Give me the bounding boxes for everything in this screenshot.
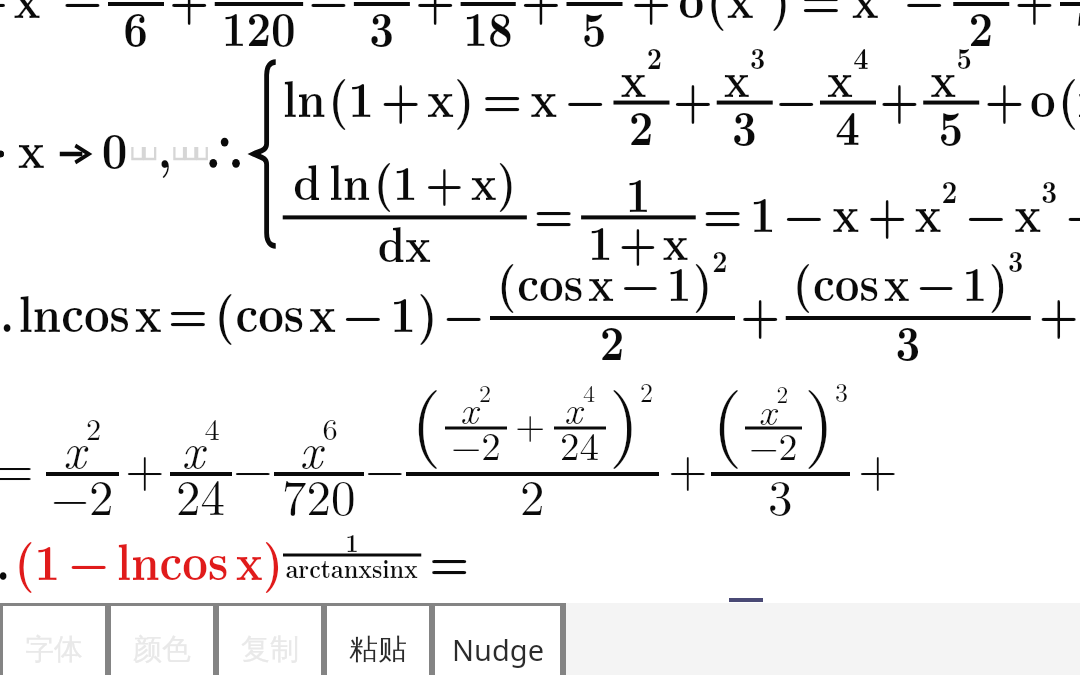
staticText: 颜色: [133, 631, 191, 668]
button[interactable]: 字体: [3, 606, 105, 675]
staticText: 复制: [241, 631, 299, 668]
button[interactable]: 粘贴: [327, 606, 429, 675]
button[interactable]: 颜色: [111, 606, 213, 675]
button[interactable]: Nudge: [435, 606, 560, 675]
button[interactable]: 复制: [219, 606, 321, 675]
staticText: 字体: [25, 631, 83, 668]
staticText: Nudge: [452, 630, 544, 669]
staticText: 粘贴: [349, 631, 407, 668]
